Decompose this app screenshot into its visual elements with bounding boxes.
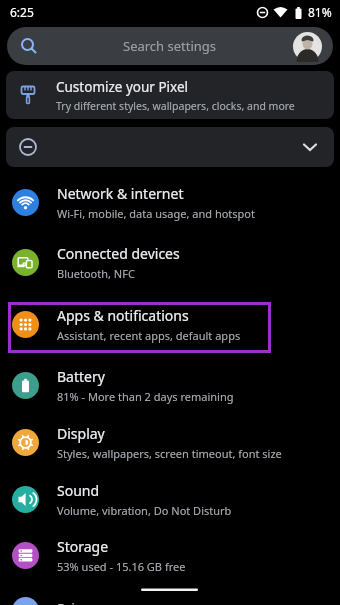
staticText: Display xyxy=(57,424,105,443)
staticText: Search settings xyxy=(123,37,217,55)
staticText: Network & internet xyxy=(57,184,184,203)
staticText: Storage xyxy=(57,537,109,556)
staticText: 53% used - 15.16 GB free xyxy=(57,559,186,574)
button[interactable]: Network & internet xyxy=(0,172,340,232)
button[interactable]: Search settings xyxy=(7,27,333,65)
staticText: Battery xyxy=(57,367,105,386)
staticText: Apps & notifications xyxy=(57,306,189,325)
button[interactable]: Battery xyxy=(0,356,340,414)
staticText: Sound xyxy=(57,481,100,500)
staticText: Bluetooth, NFC xyxy=(57,266,135,281)
staticText: Volume, vibration, Do Not Disturb xyxy=(57,503,232,518)
staticText: Try different styles, wallpapers, clocks… xyxy=(56,99,295,113)
staticText: Styles, wallpapers, screen timeout, font… xyxy=(57,446,282,461)
staticText: Customize your Pixel xyxy=(56,78,189,96)
staticText: 81% - More than 2 days remaining xyxy=(57,389,234,404)
staticText: Connected devices xyxy=(57,244,180,263)
staticText: Privacy xyxy=(57,599,104,605)
button[interactable]: Connected devices xyxy=(0,232,340,292)
button[interactable] xyxy=(6,127,334,167)
staticText: 6:25 xyxy=(10,4,34,20)
button[interactable]: Storage xyxy=(0,527,340,583)
button[interactable]: Customize your Pixel xyxy=(6,71,334,119)
button[interactable]: Display xyxy=(0,414,340,471)
staticText: Wi-Fi, mobile, data usage, and hotspot xyxy=(57,206,255,221)
button[interactable]: Apps & notifications xyxy=(0,292,340,356)
staticText: 81% xyxy=(308,4,332,20)
staticText: Assistant, recent apps, default apps xyxy=(57,328,241,343)
button[interactable]: Sound xyxy=(0,471,340,527)
